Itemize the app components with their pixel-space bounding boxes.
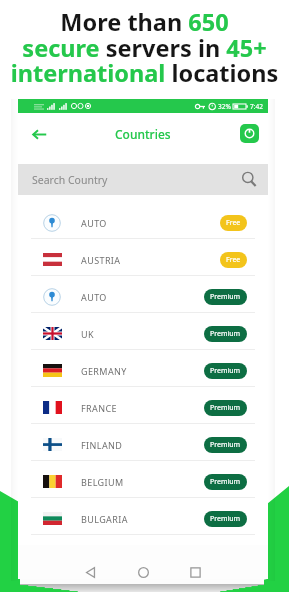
button[interactable]: BELGIUM (31, 461, 255, 497)
button[interactable]: GERMANY (31, 350, 255, 386)
staticText: GERMANY (81, 365, 127, 377)
staticText: FRANCE (81, 402, 117, 414)
button[interactable]: Premium (204, 511, 247, 527)
staticText: BULGARIA (81, 513, 128, 525)
button[interactable]: UK (31, 313, 255, 349)
button[interactable]: BULGARIA (31, 498, 255, 534)
staticText: More than 650 secure servers in 45+ inte… (0, 6, 289, 89)
button[interactable]: Premium (204, 326, 247, 342)
button[interactable]: AUSTRIA (31, 239, 255, 275)
staticText: 7:42 (250, 102, 263, 111)
staticText: FINLAND (81, 439, 123, 451)
button[interactable]: Search Country (18, 164, 268, 195)
staticText: BELGIUM (81, 476, 124, 488)
staticText: Premium (210, 514, 241, 524)
staticText: Free (226, 255, 241, 265)
staticText: Premium (210, 366, 241, 376)
staticText: Premium (210, 477, 241, 487)
button[interactable]: Premium (204, 437, 247, 453)
button[interactable]: Home (132, 561, 154, 583)
staticText: AUSTRIA (81, 254, 121, 266)
button[interactable]: AUTO (31, 276, 255, 312)
staticText: AUTO (81, 217, 107, 229)
button[interactable]: FRANCE (31, 387, 255, 423)
staticText: Free (226, 218, 241, 228)
button[interactable]: Premium (204, 400, 247, 416)
button[interactable]: Premium (204, 363, 247, 379)
button[interactable]: Recent apps (184, 561, 206, 583)
staticText: Countries (115, 126, 171, 142)
button[interactable]: Power (240, 124, 259, 143)
staticText: AUTO (81, 291, 107, 303)
staticText: UK (81, 328, 94, 340)
staticText: Premium (210, 403, 241, 413)
staticText: Premium (210, 440, 241, 450)
staticText: Premium (210, 292, 241, 302)
staticText: Premium (210, 329, 241, 339)
button[interactable]: Free (220, 215, 247, 231)
button[interactable]: AUTO (31, 202, 255, 238)
staticText: Search Country (32, 173, 108, 187)
button[interactable]: Free (220, 252, 247, 268)
button[interactable]: Premium (204, 289, 247, 305)
button[interactable]: Back (79, 561, 101, 583)
button[interactable]: Back (27, 122, 51, 146)
staticText: 32% (218, 102, 231, 111)
button[interactable]: FINLAND (31, 424, 255, 460)
button[interactable]: Premium (204, 474, 247, 490)
